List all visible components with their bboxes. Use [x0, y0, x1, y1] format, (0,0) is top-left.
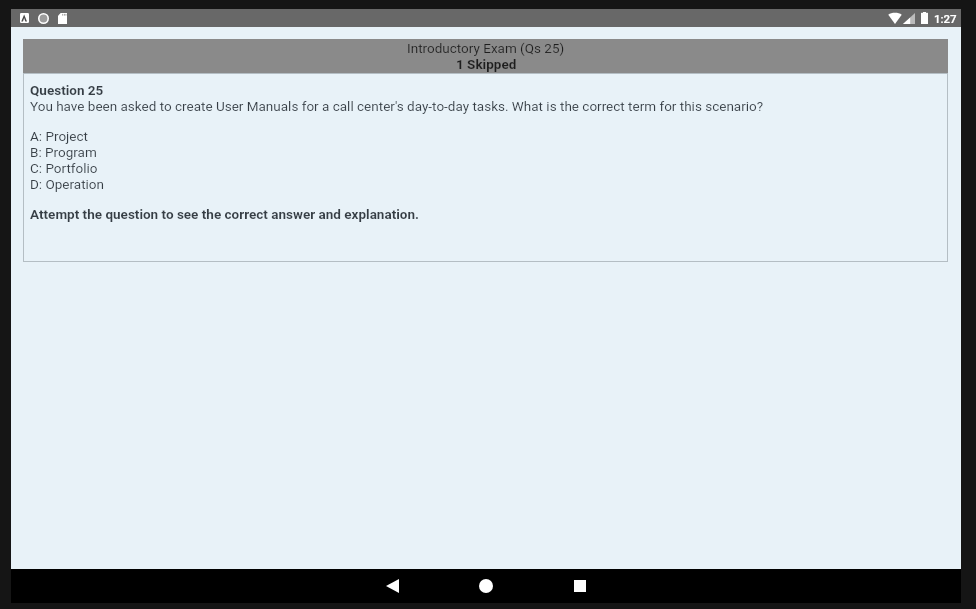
- button[interactable]: Back: [345, 569, 439, 603]
- staticText: Question 25: [30, 82, 104, 98]
- staticText: 1 Skipped: [456, 56, 517, 72]
- staticText: Introductory Exam (Qs 25): [407, 40, 565, 56]
- staticText: You have been asked to create User Manua…: [30, 98, 764, 114]
- button[interactable]: B: Program: [30, 144, 97, 160]
- staticText: Attempt the question to see the correct …: [30, 206, 419, 222]
- button[interactable]: Recent apps: [533, 569, 627, 603]
- button[interactable]: Home: [439, 569, 533, 603]
- button[interactable]: Introductory Exam (Qs 25): [23, 39, 948, 73]
- button[interactable]: C: Portfolio: [30, 160, 98, 176]
- staticText: 1:27: [934, 12, 957, 25]
- button[interactable]: D: Operation: [30, 176, 105, 192]
- button[interactable]: A: Project: [30, 128, 88, 144]
